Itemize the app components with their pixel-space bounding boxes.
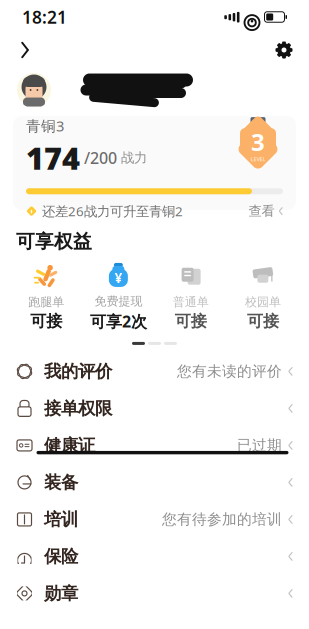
- staticText: 您有待参加的培训: [162, 510, 282, 528]
- staticText: 可享2次: [90, 311, 147, 332]
- staticText: 174: [26, 137, 80, 178]
- button[interactable]: 校园单: [227, 262, 299, 331]
- staticText: 可接: [30, 311, 62, 331]
- staticText: 青铜3: [26, 116, 64, 135]
- staticText: /200: [80, 147, 117, 168]
- staticText: 跑腿单: [28, 295, 64, 309]
- button[interactable]: 保险: [0, 538, 309, 575]
- staticText: 免费提现: [94, 294, 142, 309]
- button[interactable]: 勋章: [0, 575, 309, 612]
- staticText: 可接: [175, 311, 207, 331]
- button[interactable]: 普通单: [154, 262, 227, 331]
- staticText: 3: [251, 126, 265, 158]
- button[interactable]: 我的评价: [0, 353, 309, 390]
- staticText: 已过期: [237, 436, 282, 454]
- staticText: LEVEL: [250, 155, 265, 163]
- staticText: 保险: [44, 546, 78, 567]
- staticText: 接单权限: [44, 398, 112, 419]
- staticText: 校园单: [245, 295, 281, 309]
- staticText: 装备: [44, 472, 78, 493]
- staticText: 18:21: [22, 5, 67, 28]
- button[interactable]: 接单权限: [0, 390, 309, 427]
- button[interactable]: 跑腿单: [10, 262, 82, 331]
- button[interactable]: 培训: [0, 501, 309, 538]
- button[interactable]: 返回: [8, 35, 42, 65]
- staticText: 战力: [117, 150, 147, 166]
- staticText: 您有未读的评价: [177, 362, 282, 380]
- staticText: 可享权益: [16, 230, 92, 253]
- staticText: 查看: [249, 203, 275, 219]
- staticText: 可接: [247, 311, 279, 331]
- button[interactable]: ¥: [82, 261, 154, 332]
- staticText: 我的评价: [44, 361, 112, 382]
- staticText: 健康证: [44, 435, 95, 456]
- staticText: 勋章: [44, 583, 78, 604]
- staticText: 培训: [44, 509, 78, 530]
- staticText: 还差26战力可升至青铜2: [42, 202, 183, 220]
- button[interactable]: 装备: [0, 464, 309, 501]
- button[interactable]: 查看: [249, 203, 283, 219]
- staticText: 普通单: [173, 295, 209, 309]
- staticText: ¥: [114, 269, 122, 287]
- button[interactable]: 健康证: [0, 427, 309, 464]
- button[interactable]: 设置: [267, 35, 301, 65]
